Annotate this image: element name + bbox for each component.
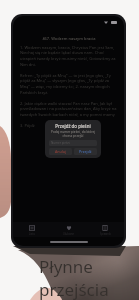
staticText: 467. Wodzem naszym bracia	[20, 36, 118, 41]
staticText: Anuluj	[55, 149, 67, 154]
button[interactable]: Przejdź	[74, 148, 97, 155]
button[interactable]: Śpiewnik	[88, 222, 122, 236]
staticText: 1. Wodzem naszym, bracia, Chrystus Pan j…	[20, 45, 118, 68]
staticText: Ulubione	[63, 232, 75, 236]
staticText: Przejdź	[79, 149, 92, 154]
staticText: Refren: „Ty pójdź za Mną” — to jest Jego…	[20, 73, 118, 96]
staticText: Numer pieśni	[51, 141, 71, 145]
button[interactable]: Ulubione	[52, 222, 86, 236]
staticText: przejścia	[39, 278, 109, 300]
button[interactable]: Numer pieśni	[49, 140, 97, 146]
staticText: Przejdź do pieśni	[49, 123, 97, 129]
staticText: 2. Jakie ciężkie walki staczać Pan nasz …	[20, 101, 118, 118]
staticText: Podaj numer pieśni, do której chcesz prz…	[49, 130, 97, 138]
staticText: Płynne	[39, 255, 93, 278]
button[interactable]: Lista	[15, 222, 49, 236]
staticText: Śpiewnik	[100, 232, 111, 236]
staticText: Lista	[29, 232, 35, 236]
button[interactable]: Anuluj	[49, 148, 72, 155]
staticText: 3. Pójdź	[20, 123, 35, 128]
